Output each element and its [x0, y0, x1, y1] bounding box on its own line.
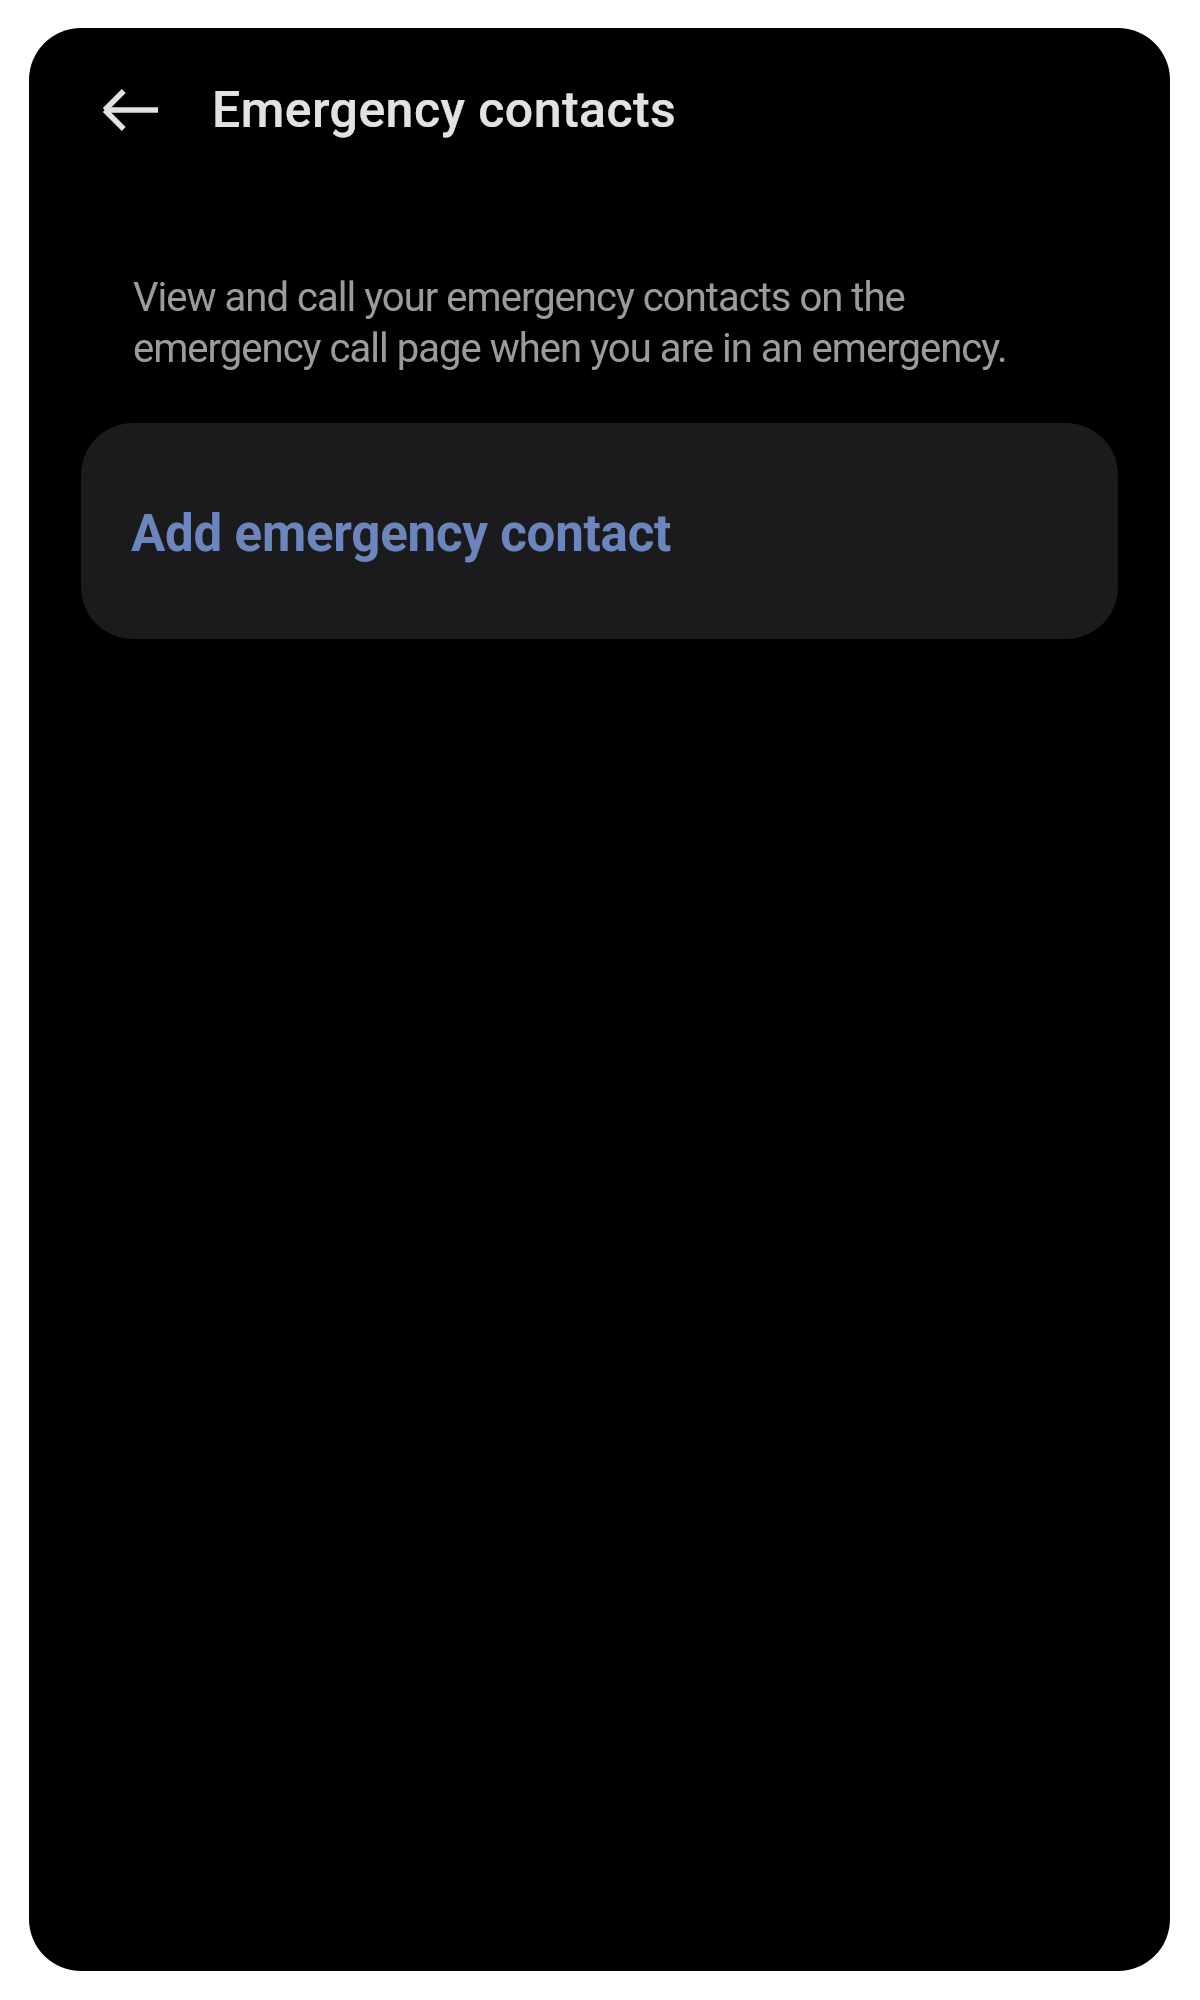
staticText: Add emergency contact	[131, 504, 672, 564]
staticText: Emergency contacts	[212, 81, 677, 140]
staticText: View and call your emergency contacts on…	[133, 271, 1040, 373]
button[interactable]: Add emergency contact	[81, 423, 1118, 639]
button[interactable]: Back	[80, 60, 180, 160]
